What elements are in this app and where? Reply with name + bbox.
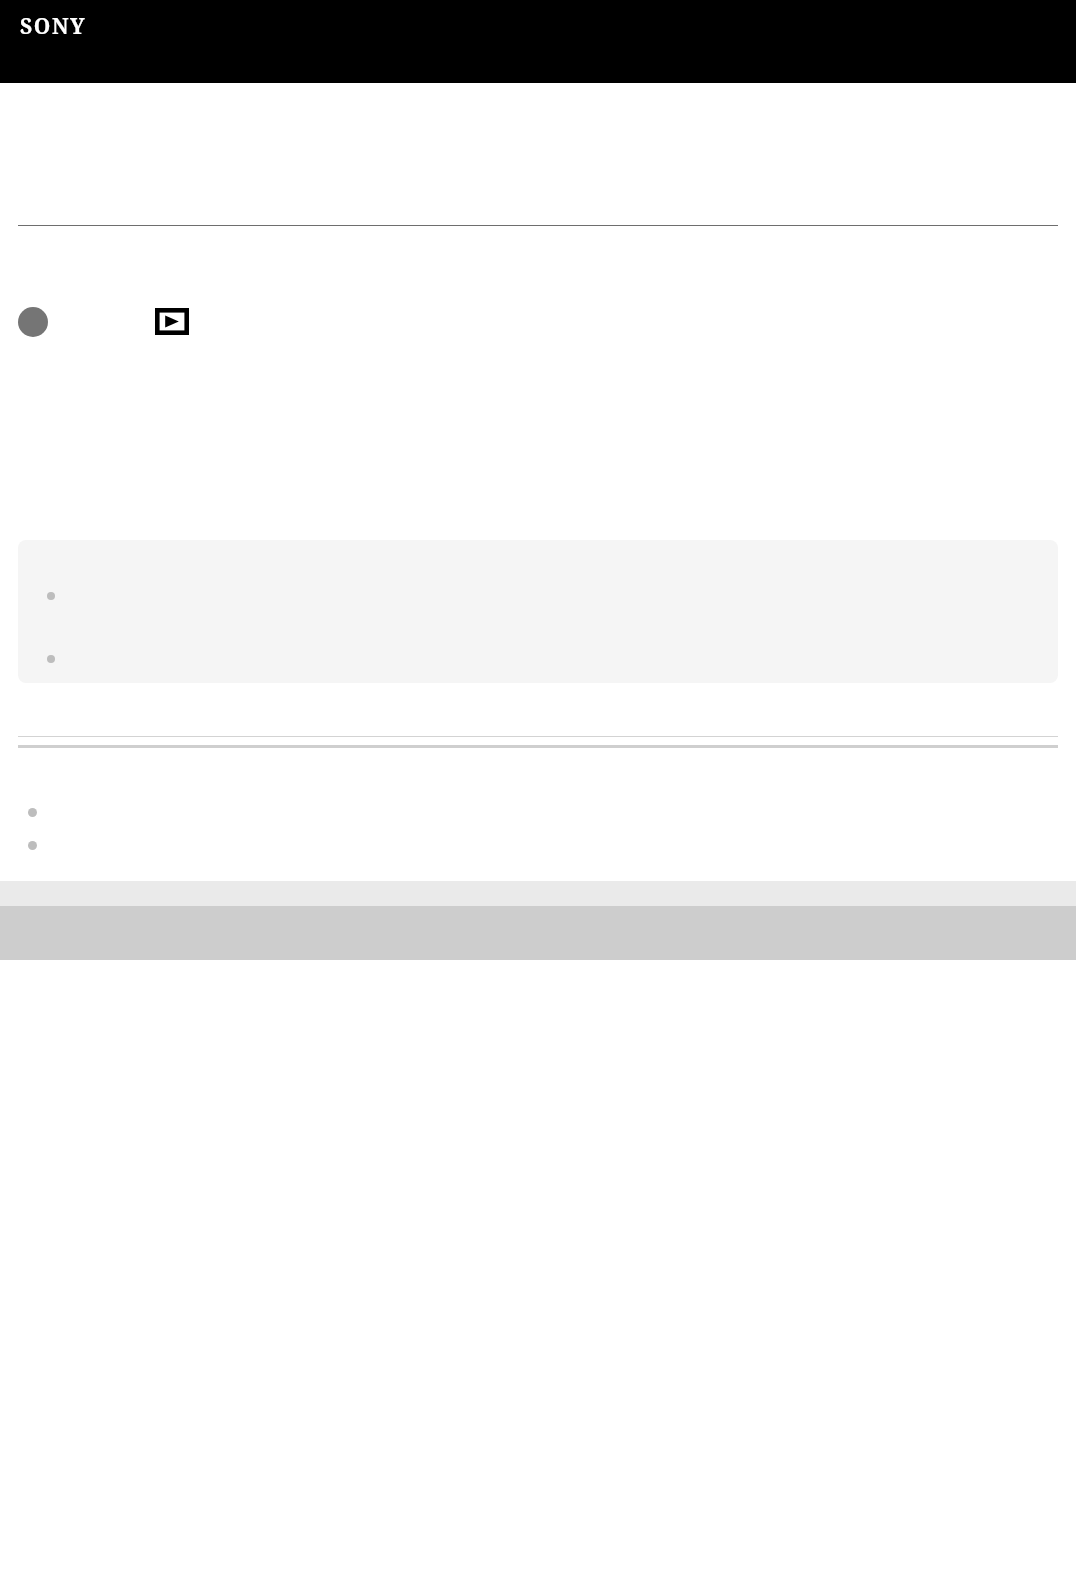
button[interactable]: Playback [155, 308, 189, 335]
staticText: SONY [20, 12, 87, 41]
button[interactable]: SONY [18, 10, 89, 43]
